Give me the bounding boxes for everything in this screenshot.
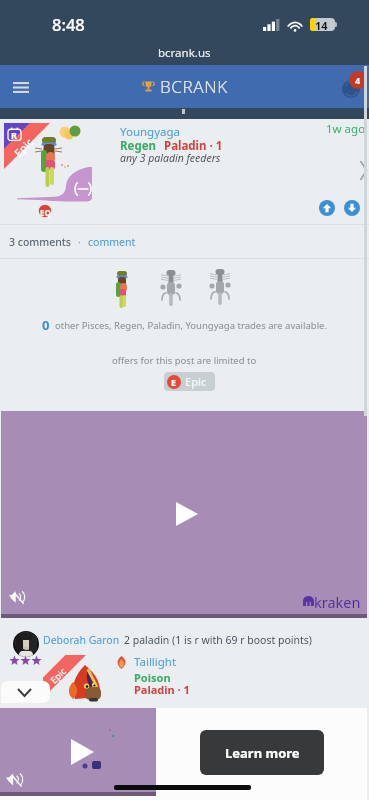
staticText: ·: [78, 235, 81, 249]
staticText: 0: [42, 316, 50, 334]
staticText: E: [171, 376, 177, 388]
button[interactable]: Learn more: [200, 730, 324, 775]
button[interactable]: Downvote: [344, 200, 360, 216]
staticText: Paladin · 1: [134, 682, 190, 697]
staticText: bcrank.us: [158, 45, 211, 61]
button[interactable]: Next: [360, 161, 367, 180]
button[interactable]: E: [164, 372, 215, 391]
staticText: kraken: [314, 592, 361, 612]
button[interactable]: Youngyaga: [120, 124, 181, 140]
button[interactable]: 3 comments: [0, 225, 369, 258]
staticText: other Pisces, Regen, Paladin, Youngyaga …: [55, 319, 327, 332]
staticText: 2 paladin (1 is r with 69 r boost points…: [124, 633, 312, 647]
button[interactable]: Upvote: [319, 200, 335, 216]
staticText: Paladin · 1: [164, 138, 223, 154]
staticText: 4: [355, 74, 361, 86]
staticText: 1w ago: [326, 121, 366, 137]
staticText: BCRANK: [160, 75, 228, 98]
button[interactable]: Unmute: [9, 589, 25, 605]
staticText: Regen: [120, 138, 157, 154]
button[interactable]: Unmute ad: [6, 771, 23, 788]
staticText: R: [11, 129, 17, 141]
button[interactable]: Taillight: [134, 654, 177, 670]
staticText: Epic: [185, 374, 207, 389]
button[interactable]: Collapse: [1, 681, 50, 703]
staticText: Learn more: [225, 744, 300, 762]
button[interactable]: Deborah Garon profile photo: [13, 631, 39, 657]
staticText: Epic: [47, 664, 69, 686]
staticText: 14: [315, 18, 328, 33]
staticText: EQ: [40, 207, 51, 218]
staticText: offers for this post are limited to: [112, 354, 257, 367]
button[interactable]: Account: [342, 80, 360, 98]
staticText: 3 comments: [9, 235, 71, 249]
staticText: 8:48: [52, 13, 85, 35]
staticText: comment: [88, 235, 136, 249]
staticText: Deborah Garon: [43, 633, 120, 647]
staticText: Poison: [134, 670, 171, 685]
button[interactable]: Open navigation menu: [0, 65, 41, 108]
staticText: Epic: [11, 135, 36, 160]
staticText: any 3 paladin feeders: [120, 151, 221, 165]
